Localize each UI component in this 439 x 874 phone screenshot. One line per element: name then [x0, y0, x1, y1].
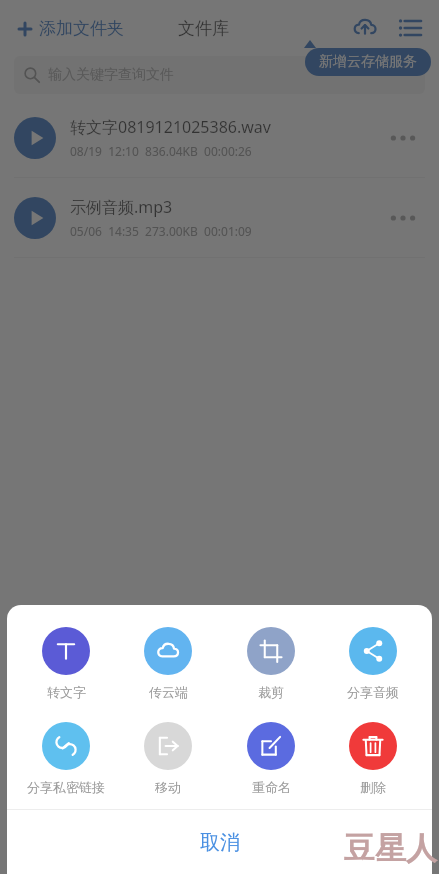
button[interactable]: 示例音频.mp3	[0, 178, 439, 257]
staticText: 删除	[360, 779, 386, 795]
staticText: 示例音频.mp3	[70, 196, 173, 218]
staticText: 重命名	[252, 779, 291, 795]
staticText: 转文字	[47, 684, 86, 700]
staticText: 分享私密链接	[27, 779, 105, 795]
button[interactable]: 转文字	[22, 625, 110, 702]
button[interactable]: 云存储	[345, 8, 385, 48]
staticText: 传云端	[149, 684, 188, 700]
button[interactable]: 取消	[7, 810, 432, 874]
button[interactable]: 分享音频	[329, 625, 417, 702]
button[interactable]: 更多	[381, 196, 425, 240]
button[interactable]: 裁剪	[227, 625, 315, 702]
button[interactable]: 添加文件夹	[14, 12, 126, 45]
button[interactable]: 更多	[381, 116, 425, 160]
button[interactable]: 传云端	[124, 625, 212, 702]
button[interactable]: 列表视图	[391, 9, 429, 47]
staticText: 输入关键字查询文件	[48, 66, 174, 84]
staticText: 文件库	[178, 18, 229, 39]
button[interactable]: 分享私密链接	[22, 720, 110, 797]
button[interactable]: 新增云存储服务	[305, 48, 431, 76]
staticText: 新增云存储服务	[319, 53, 417, 71]
staticText: 转文字0819121025386.wav	[70, 116, 271, 138]
button[interactable]: 删除	[329, 720, 417, 797]
staticText: 裁剪	[258, 684, 284, 700]
button[interactable]: 重命名	[227, 720, 315, 797]
staticText: 添加文件夹	[39, 18, 124, 39]
staticText: 移动	[155, 779, 181, 795]
button[interactable]: 转文字0819121025386.wav	[0, 98, 439, 177]
staticText: 豆星人	[344, 829, 437, 868]
button[interactable]: 移动	[124, 720, 212, 797]
staticText: 取消	[200, 830, 240, 855]
staticText: 08/19 12:10 836.04KB 00:00:26	[70, 143, 252, 159]
staticText: 05/06 14:35 273.00KB 00:01:09	[70, 223, 252, 239]
button[interactable]: 输入关键字查询文件	[14, 56, 425, 94]
staticText: 分享音频	[347, 684, 399, 700]
